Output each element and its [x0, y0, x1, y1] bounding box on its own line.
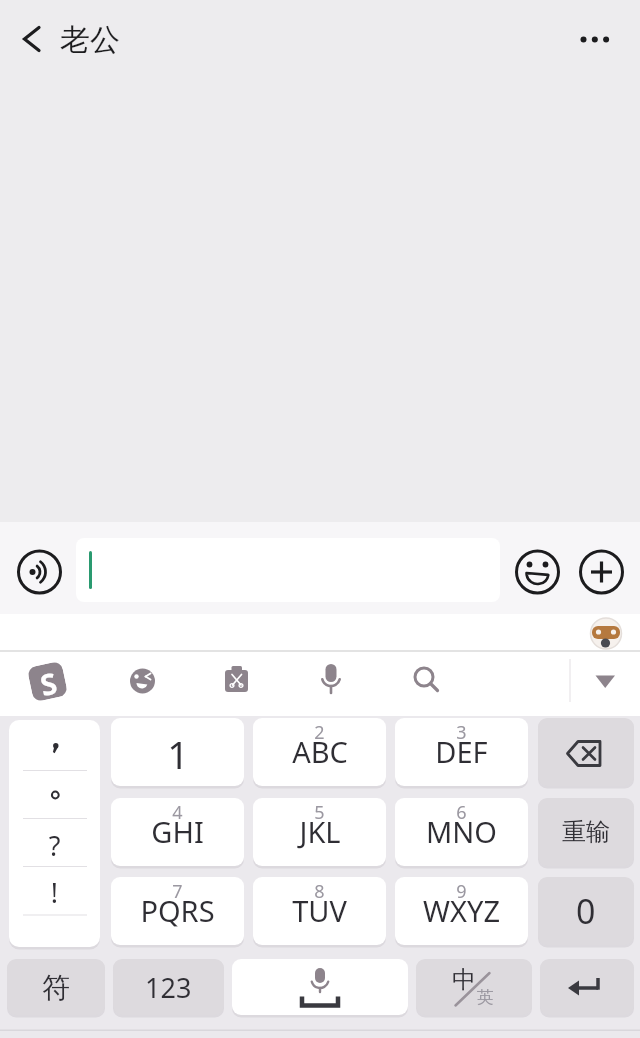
staticText: TUV — [292, 891, 347, 930]
staticText: PQRS — [140, 891, 215, 930]
button[interactable]: 6 — [395, 798, 528, 866]
button[interactable]: 0 — [538, 877, 634, 945]
staticText: 老公 — [60, 21, 120, 59]
staticText: 5 — [314, 800, 325, 825]
button[interactable] — [9, 720, 100, 947]
button[interactable]: 9 — [395, 877, 528, 945]
button[interactable] — [210, 655, 264, 709]
staticText: GHI — [151, 812, 204, 851]
button[interactable]: 重输 — [538, 798, 634, 866]
button[interactable] — [16, 548, 64, 596]
staticText: 0 — [576, 888, 596, 934]
button[interactable]: 2 — [253, 718, 386, 786]
button[interactable]: 8 — [253, 877, 386, 945]
staticText: 中 — [452, 965, 476, 995]
button[interactable] — [304, 655, 358, 709]
staticText: 重输 — [562, 817, 610, 847]
staticText: WXYZ — [423, 891, 500, 930]
staticText: 符 — [42, 970, 70, 1005]
staticText: 7 — [172, 879, 183, 904]
button[interactable]: 4 — [111, 798, 244, 866]
staticText: 1 — [167, 728, 189, 780]
button[interactable] — [538, 718, 634, 786]
button[interactable]: 5 — [253, 798, 386, 866]
staticText: DEF — [435, 732, 488, 771]
staticText: 9 — [456, 879, 467, 904]
button[interactable] — [566, 16, 624, 62]
staticText: 2 — [314, 720, 325, 745]
button[interactable]: 7 — [111, 877, 244, 945]
button[interactable]: 123 — [113, 959, 224, 1015]
staticText: 8 — [314, 879, 325, 904]
staticText: ABC — [292, 732, 348, 771]
button[interactable] — [20, 655, 76, 711]
button[interactable] — [76, 538, 500, 602]
staticText: 4 — [172, 800, 183, 825]
button[interactable]: 1 — [111, 718, 244, 786]
button[interactable]: 3 — [395, 718, 528, 786]
button[interactable]: 符 — [7, 959, 105, 1015]
button[interactable] — [577, 548, 625, 596]
button[interactable] — [540, 959, 634, 1015]
button[interactable] — [416, 959, 532, 1015]
staticText: MNO — [426, 812, 497, 851]
staticText: ! — [9, 874, 100, 908]
staticText: 英 — [477, 987, 494, 1008]
button[interactable] — [232, 959, 408, 1015]
button[interactable] — [398, 655, 452, 709]
staticText: S — [36, 663, 59, 700]
button[interactable] — [513, 548, 561, 596]
staticText: JKL — [299, 812, 341, 851]
button[interactable] — [116, 655, 170, 709]
button[interactable] — [578, 655, 632, 709]
button[interactable] — [8, 16, 54, 62]
staticText: 3 — [456, 720, 467, 745]
staticText: 123 — [145, 969, 192, 1006]
staticText: ? — [9, 827, 100, 861]
staticText: 6 — [456, 800, 467, 825]
